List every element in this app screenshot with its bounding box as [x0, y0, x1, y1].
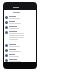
button[interactable]	[4, 53, 36, 58]
button[interactable]	[4, 25, 36, 30]
button[interactable]	[4, 20, 36, 25]
button[interactable]	[4, 30, 36, 43]
button[interactable]	[4, 43, 36, 48]
button[interactable]	[4, 48, 36, 53]
button[interactable]	[4, 15, 36, 20]
button[interactable]	[4, 58, 36, 63]
